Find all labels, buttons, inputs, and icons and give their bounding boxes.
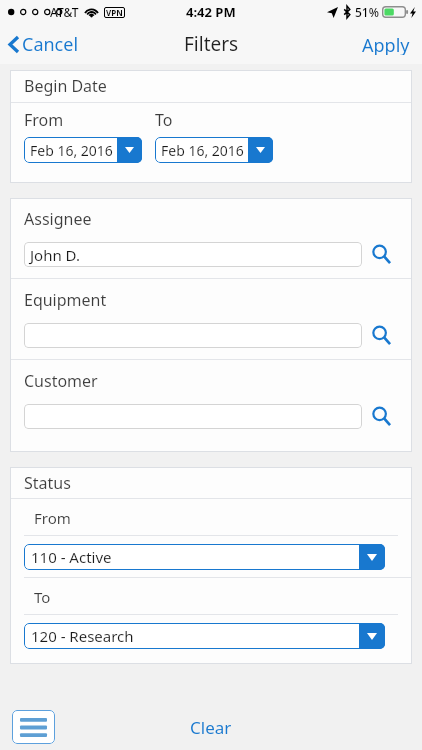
staticText: Status	[24, 472, 71, 494]
staticText: From	[24, 109, 64, 131]
button[interactable]: Apply	[350, 24, 422, 64]
staticText: From	[34, 508, 71, 528]
staticText: John D.	[30, 245, 80, 265]
button[interactable]	[24, 323, 362, 348]
button[interactable]: Feb 16, 2016	[155, 137, 273, 163]
staticText: Begin Date	[24, 75, 107, 97]
staticText: 51%	[355, 4, 379, 20]
staticText: Customer	[24, 370, 98, 392]
button[interactable]: Cancel	[0, 25, 91, 64]
staticText: 4:42 PM	[186, 3, 236, 21]
button[interactable]: Search Assignee	[362, 239, 400, 269]
staticText: Equipment	[24, 289, 107, 311]
button[interactable]	[24, 404, 362, 429]
staticText: Assignee	[24, 208, 92, 230]
button[interactable]: 110 - Active	[24, 544, 385, 570]
button[interactable]: Search Equipment	[362, 320, 400, 350]
button[interactable]: Menu	[12, 710, 55, 744]
staticText: Feb 16, 2016	[30, 141, 113, 160]
staticText: 110 - Active	[31, 547, 112, 567]
staticText: AT&T	[50, 4, 79, 20]
staticText: Cancel	[22, 32, 79, 57]
staticText: 120 - Research	[31, 626, 134, 646]
staticText: VPN	[106, 7, 123, 18]
button[interactable]: Clear	[166, 707, 256, 748]
staticText: Feb 16, 2016	[161, 141, 244, 160]
staticText: To	[155, 109, 173, 131]
staticText: To	[34, 587, 51, 607]
staticText: Clear	[190, 716, 232, 739]
staticText: Apply	[362, 33, 410, 55]
button[interactable]: John D.	[24, 242, 362, 267]
staticText: Filters	[184, 31, 239, 57]
button[interactable]: Feb 16, 2016	[24, 137, 142, 163]
button[interactable]: Search Customer	[362, 401, 400, 431]
button[interactable]: 120 - Research	[24, 623, 385, 649]
